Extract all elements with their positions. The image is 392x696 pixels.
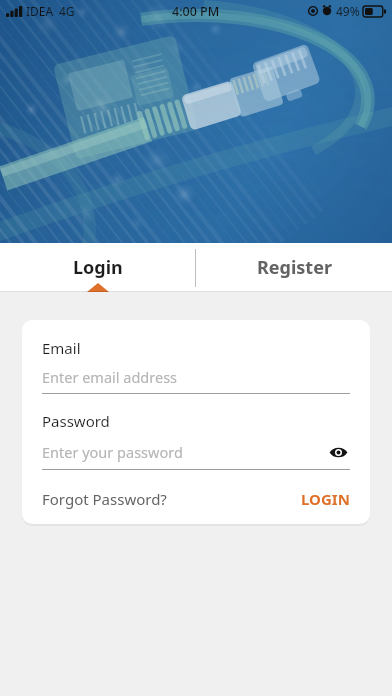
staticText: 49% — [336, 3, 360, 19]
staticText: Email — [42, 338, 81, 358]
button[interactable]: Show password — [326, 440, 350, 464]
button[interactable]: Register — [196, 243, 392, 292]
staticText: 4:00 PM — [172, 3, 220, 20]
staticText: Enter your password — [42, 442, 183, 462]
staticText: LOGIN — [301, 489, 350, 509]
staticText: Forgot Password? — [42, 489, 167, 509]
staticText: Password — [42, 411, 110, 431]
staticText: Login — [73, 255, 123, 280]
staticText: IDEA — [26, 3, 54, 19]
button[interactable]: Forgot Password? — [42, 489, 301, 509]
staticText: Register — [257, 255, 332, 280]
staticText: 4G — [59, 3, 75, 19]
button[interactable]: Enter email address — [42, 367, 350, 387]
button[interactable]: LOGIN — [301, 489, 350, 509]
staticText: Enter email address — [42, 367, 178, 387]
button[interactable]: Enter your password — [42, 442, 326, 462]
button[interactable]: Login — [0, 243, 195, 292]
